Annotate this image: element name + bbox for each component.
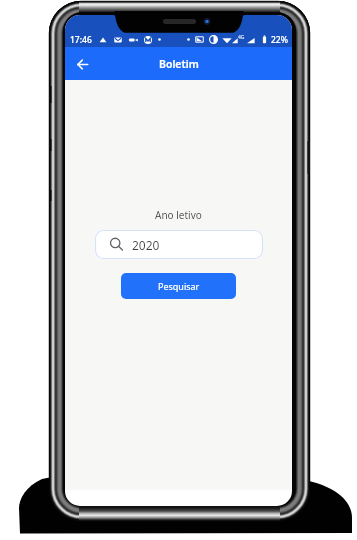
staticText: Boletim	[159, 57, 199, 71]
button[interactable]: Pesquisar	[121, 273, 236, 299]
staticText: 17:46	[70, 34, 92, 46]
staticText: 4G	[238, 34, 245, 41]
staticText: 22%	[271, 34, 288, 46]
staticText: Pesquisar	[158, 280, 200, 292]
staticText: 2020	[132, 237, 160, 253]
button[interactable]: 2020	[95, 230, 263, 259]
button[interactable]: Back	[72, 54, 92, 74]
staticText: Ano letivo	[155, 208, 202, 222]
